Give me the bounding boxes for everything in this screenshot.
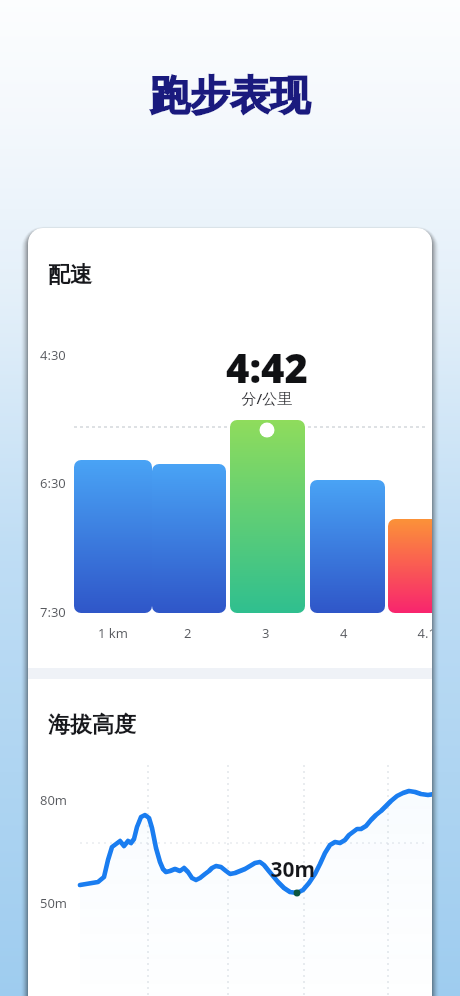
- button[interactable]: Pace chart: [28, 228, 432, 668]
- button[interactable]: Elevation chart: [28, 679, 432, 996]
